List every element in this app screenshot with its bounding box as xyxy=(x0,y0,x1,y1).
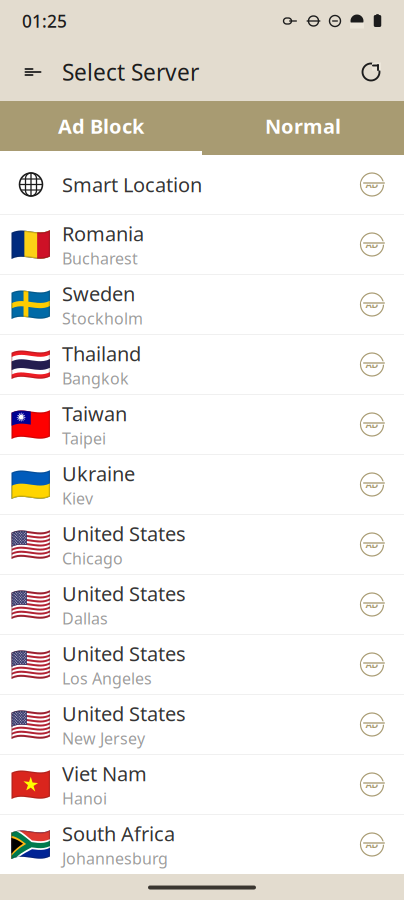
staticText: New Jersey xyxy=(62,728,145,749)
staticText: 🇿🇦 xyxy=(10,825,52,864)
staticText: AD xyxy=(365,298,378,311)
staticText: AD xyxy=(365,238,378,251)
staticText: United States xyxy=(62,640,186,667)
staticText: 🇺🇸 xyxy=(10,645,52,684)
staticText: Taiwan xyxy=(62,400,127,427)
button[interactable]: 🇿🇦 xyxy=(0,815,404,875)
button[interactable]: Ad Block xyxy=(0,101,202,151)
staticText: Chicago xyxy=(62,548,123,569)
staticText: Bucharest xyxy=(62,248,138,269)
staticText: Viet Nam xyxy=(62,760,147,787)
staticText: AD xyxy=(365,658,378,671)
staticText: United States xyxy=(62,580,186,607)
staticText: Sweden xyxy=(62,280,135,307)
staticText: 🇻🇳 xyxy=(10,765,52,804)
staticText: Romania xyxy=(62,220,144,247)
button[interactable]: 🇺🇸 xyxy=(0,635,404,695)
staticText: Johannesburg xyxy=(62,848,168,869)
staticText: 🇸🇪 xyxy=(10,285,52,324)
staticText: South Africa xyxy=(62,820,175,847)
button[interactable]: Smart Location xyxy=(0,155,404,215)
staticText: 🇹🇼 xyxy=(10,405,52,444)
staticText: Normal xyxy=(265,113,341,139)
staticText: Smart Location xyxy=(62,171,202,198)
staticText: United States xyxy=(62,700,186,727)
button[interactable]: Normal xyxy=(202,101,404,151)
button[interactable]: 🇷🇴 xyxy=(0,215,404,275)
staticText: Select Server xyxy=(62,57,199,87)
staticText: Kiev xyxy=(62,488,93,509)
staticText: AD xyxy=(365,598,378,611)
button[interactable]: 🇹🇼 xyxy=(0,395,404,455)
staticText: Taipei xyxy=(62,428,106,449)
button[interactable]: 🇸🇪 xyxy=(0,275,404,335)
staticText: AD xyxy=(365,478,378,491)
staticText: Dallas xyxy=(62,608,108,629)
staticText: AD xyxy=(365,718,378,731)
staticText: AD xyxy=(365,358,378,371)
button[interactable]: 🇻🇳 xyxy=(0,755,404,815)
button[interactable]: Back xyxy=(8,50,58,94)
staticText: Thailand xyxy=(62,340,141,367)
staticText: AD xyxy=(365,838,378,851)
staticText: United States xyxy=(62,520,186,547)
staticText: AD xyxy=(365,538,378,551)
staticText: 🇺🇸 xyxy=(10,525,52,564)
staticText: 01:25 xyxy=(22,9,67,32)
staticText: Hanoi xyxy=(62,788,107,809)
button[interactable]: 🇺🇸 xyxy=(0,575,404,635)
staticText: AD xyxy=(365,778,378,791)
button[interactable]: Refresh xyxy=(346,49,396,95)
staticText: AD xyxy=(365,178,378,191)
staticText: Ukraine xyxy=(62,460,135,487)
button[interactable]: 🇺🇦 xyxy=(0,455,404,515)
staticText: 🇺🇸 xyxy=(10,705,52,744)
button[interactable]: 🇹🇭 xyxy=(0,335,404,395)
staticText: Bangkok xyxy=(62,368,129,389)
button[interactable]: 🇺🇸 xyxy=(0,695,404,755)
staticText: Ad Block xyxy=(58,113,144,139)
staticText: 🇷🇴 xyxy=(10,225,52,264)
button[interactable]: 🇺🇸 xyxy=(0,515,404,575)
staticText: Los Angeles xyxy=(62,668,152,689)
staticText: AD xyxy=(365,418,378,431)
staticText: 🇹🇭 xyxy=(10,345,52,384)
staticText: 🇺🇸 xyxy=(10,585,52,624)
staticText: Stockholm xyxy=(62,308,143,329)
staticText: 🇺🇦 xyxy=(10,465,52,504)
